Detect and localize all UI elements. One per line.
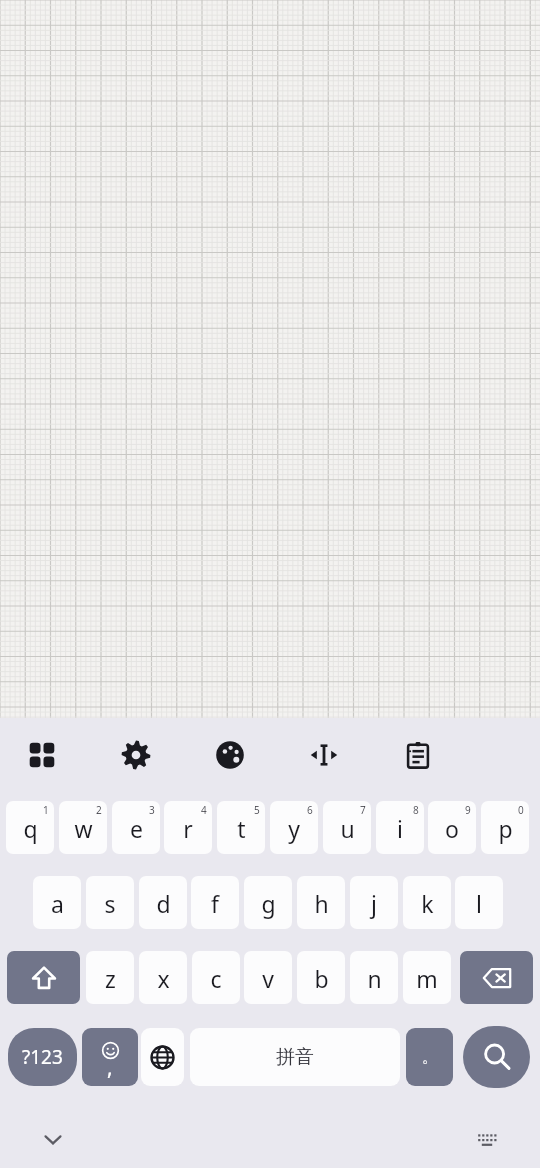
staticText: r	[183, 813, 193, 844]
button[interactable]: w	[59, 801, 107, 854]
staticText: 7	[360, 803, 366, 817]
button[interactable]: r	[164, 801, 212, 854]
staticText: ?123	[22, 1044, 63, 1070]
staticText: 3	[149, 803, 155, 817]
staticText: 拼音	[276, 1045, 314, 1069]
button[interactable]: k	[403, 876, 451, 929]
button[interactable]: t	[217, 801, 265, 854]
staticText: u	[340, 813, 355, 844]
button[interactable]: b	[297, 951, 345, 1004]
staticText: 6	[307, 803, 313, 817]
button[interactable]: s	[86, 876, 134, 929]
staticText: 。	[422, 1048, 437, 1067]
button[interactable]: Clipboard	[398, 735, 438, 775]
staticText: ,	[107, 1053, 113, 1082]
button[interactable]: Apps	[22, 735, 62, 775]
staticText: j	[371, 888, 377, 919]
staticText: p	[498, 813, 513, 844]
button[interactable]: Period	[406, 1028, 453, 1086]
button[interactable]: z	[86, 951, 134, 1004]
button[interactable]: f	[191, 876, 239, 929]
staticText: g	[261, 888, 276, 919]
button[interactable]: v	[244, 951, 292, 1004]
staticText: 4	[201, 803, 207, 817]
staticText: s	[104, 888, 116, 919]
button[interactable]: Move cursor	[304, 735, 344, 775]
staticText: t	[237, 813, 246, 844]
staticText: 5	[254, 803, 260, 817]
staticText: m	[416, 963, 438, 994]
button[interactable]: Backspace	[460, 951, 533, 1004]
button[interactable]: ?123	[8, 1028, 77, 1086]
staticText: b	[314, 963, 329, 994]
button[interactable]: m	[403, 951, 451, 1004]
button[interactable]: Search	[463, 1026, 530, 1088]
staticText: 9	[465, 803, 471, 817]
staticText: 0	[518, 803, 524, 817]
staticText: f	[211, 888, 219, 919]
staticText: w	[74, 813, 93, 844]
staticText: k	[421, 888, 434, 919]
button[interactable]: o	[428, 801, 476, 854]
button[interactable]: g	[244, 876, 292, 929]
button[interactable]: x	[139, 951, 187, 1004]
staticText: n	[367, 963, 382, 994]
staticText: d	[156, 888, 171, 919]
button[interactable]: q	[6, 801, 54, 854]
button[interactable]: i	[376, 801, 424, 854]
staticText: 8	[413, 803, 419, 817]
button[interactable]: a	[33, 876, 81, 929]
button[interactable]: Hide keyboard	[30, 1116, 76, 1162]
staticText: x	[157, 963, 170, 994]
staticText: c	[210, 963, 222, 994]
button[interactable]: Theme	[210, 735, 250, 775]
button[interactable]: h	[297, 876, 345, 929]
staticText: h	[314, 888, 329, 919]
staticText: a	[51, 888, 64, 919]
staticText: q	[23, 813, 38, 844]
staticText: o	[445, 813, 459, 844]
staticText: i	[397, 813, 403, 844]
button[interactable]: y	[270, 801, 318, 854]
button[interactable]: 拼音	[190, 1028, 400, 1086]
button[interactable]: Switch language	[141, 1028, 184, 1086]
button[interactable]: Change keyboard	[464, 1116, 510, 1162]
button[interactable]: j	[350, 876, 398, 929]
staticText: z	[105, 963, 116, 994]
staticText: y	[288, 813, 300, 844]
button[interactable]: Settings	[116, 735, 156, 775]
button[interactable]: n	[350, 951, 398, 1004]
staticText: 1	[43, 803, 49, 817]
button[interactable]: d	[139, 876, 187, 929]
button[interactable]: e	[112, 801, 160, 854]
staticText: e	[130, 813, 143, 844]
button[interactable]: Emoji and comma	[82, 1028, 138, 1086]
button[interactable]: c	[192, 951, 240, 1004]
button[interactable]: Shift	[7, 951, 80, 1004]
button[interactable]: u	[323, 801, 371, 854]
button[interactable]: p	[481, 801, 529, 854]
button[interactable]: l	[455, 876, 503, 929]
staticText: v	[262, 963, 274, 994]
staticText: 2	[96, 803, 102, 817]
staticText: l	[476, 888, 482, 919]
